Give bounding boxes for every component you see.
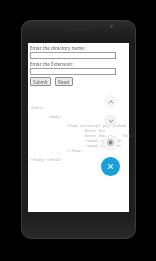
button[interactable] [30,68,116,75]
staticText: Enter the Extension: [30,61,74,67]
button[interactable] [30,52,116,59]
staticText: Enter the Ext [30,133,131,138]
staticText: Enter the directory name : [30,45,87,51]
button[interactable]: Close [101,157,120,176]
staticText: Submit [33,79,48,85]
staticText: <input type='res [30,143,122,148]
staticText: Reset [58,79,70,85]
staticText: <body> [30,114,62,119]
staticText: Enter the di [30,128,131,133]
button[interactable]: Scroll down [104,114,117,127]
button[interactable]: Scroll up [104,95,117,108]
staticText: <input type='sub [30,138,122,143]
staticText: </form> [30,148,83,153]
staticText: <html> [30,105,44,110]
button[interactable]: Reset [55,77,73,86]
button[interactable]: Submit [30,77,51,86]
button[interactable]: Record [103,135,118,150]
staticText: <form action=pl.php method [30,123,126,128]
staticText: </body></html> [30,157,62,162]
